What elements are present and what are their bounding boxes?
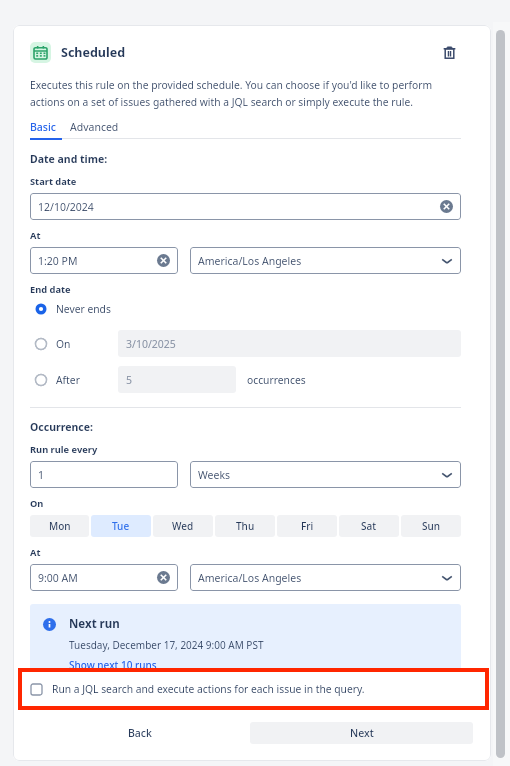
staticText: On <box>56 337 71 351</box>
button[interactable]: Weeks <box>190 461 461 488</box>
staticText: 5 <box>126 373 228 387</box>
staticText: Date and time: <box>30 152 108 166</box>
button[interactable]: Wed <box>153 515 213 537</box>
staticText: Occurrence: <box>30 420 93 434</box>
staticText: Wed <box>172 519 194 533</box>
staticText: Run a JQL search and execute actions for… <box>52 682 365 696</box>
button[interactable]: Never ends <box>30 302 461 316</box>
button[interactable]: Mon <box>30 515 89 537</box>
button[interactable]: America/Los Angeles <box>190 564 461 591</box>
staticText: occurrences <box>247 373 306 387</box>
staticText: Mon <box>49 519 71 533</box>
staticText: Show next 10 runs <box>69 658 157 672</box>
staticText: Run rule every <box>30 443 98 456</box>
button[interactable]: 9:00 AM <box>30 564 178 591</box>
staticText: Next <box>350 726 374 740</box>
button[interactable]: 1:20 PM <box>30 247 178 274</box>
staticText: 1:20 PM <box>38 254 157 268</box>
staticText: On <box>30 497 44 510</box>
button[interactable]: Sat <box>339 515 399 537</box>
staticText: End date <box>30 283 71 296</box>
button[interactable]: Delete <box>437 40 461 64</box>
staticText: Basic <box>30 120 56 134</box>
staticText: Sun <box>422 519 441 533</box>
button[interactable]: 1 <box>30 461 178 488</box>
staticText: 9:00 AM <box>38 571 157 585</box>
staticText: Tue <box>112 519 130 533</box>
staticText: Advanced <box>70 120 119 134</box>
staticText: Back <box>128 726 152 740</box>
button[interactable]: 12/10/2024 <box>30 193 461 220</box>
staticText: Scheduled <box>61 44 126 61</box>
staticText: America/Los Angeles <box>198 254 441 268</box>
button[interactable]: Thu <box>215 515 275 537</box>
button[interactable]: Fri <box>277 515 337 537</box>
staticText: Executes this rule on the provided sched… <box>30 78 433 92</box>
button[interactable]: Tue <box>91 515 151 537</box>
button[interactable]: 3/10/2025 <box>118 330 461 357</box>
button[interactable]: Next <box>250 722 473 744</box>
button[interactable]: After <box>30 373 118 387</box>
staticText: Next run <box>69 616 120 632</box>
button[interactable]: America/Los Angeles <box>190 247 461 274</box>
button[interactable]: 5 <box>118 366 236 393</box>
button[interactable]: Show next 10 runs <box>69 658 157 672</box>
staticText: Fri <box>301 519 314 533</box>
staticText: actions on a set of issues gathered with… <box>30 95 414 109</box>
staticText: Start date <box>30 175 77 188</box>
staticText: Never ends <box>56 302 111 316</box>
staticText: America/Los Angeles <box>198 571 441 585</box>
button[interactable]: Sun <box>401 515 461 537</box>
staticText: 12/10/2024 <box>38 200 440 214</box>
staticText: 3/10/2025 <box>126 337 453 351</box>
staticText: At <box>30 546 41 559</box>
staticText: 1 <box>38 468 170 482</box>
button[interactable]: Advanced <box>70 120 119 138</box>
staticText: Thu <box>236 519 255 533</box>
staticText: Tuesday, December 17, 2024 9:00 AM PST <box>69 638 264 652</box>
button[interactable]: On <box>30 337 118 351</box>
button[interactable]: Basic <box>30 120 60 138</box>
staticText: At <box>30 229 41 242</box>
button[interactable]: Back <box>30 722 250 744</box>
staticText: After <box>56 373 80 387</box>
staticText: Sat <box>361 519 377 533</box>
staticText: Weeks <box>198 468 441 482</box>
button[interactable]: Run a JQL search and execute actions for… <box>18 668 489 710</box>
